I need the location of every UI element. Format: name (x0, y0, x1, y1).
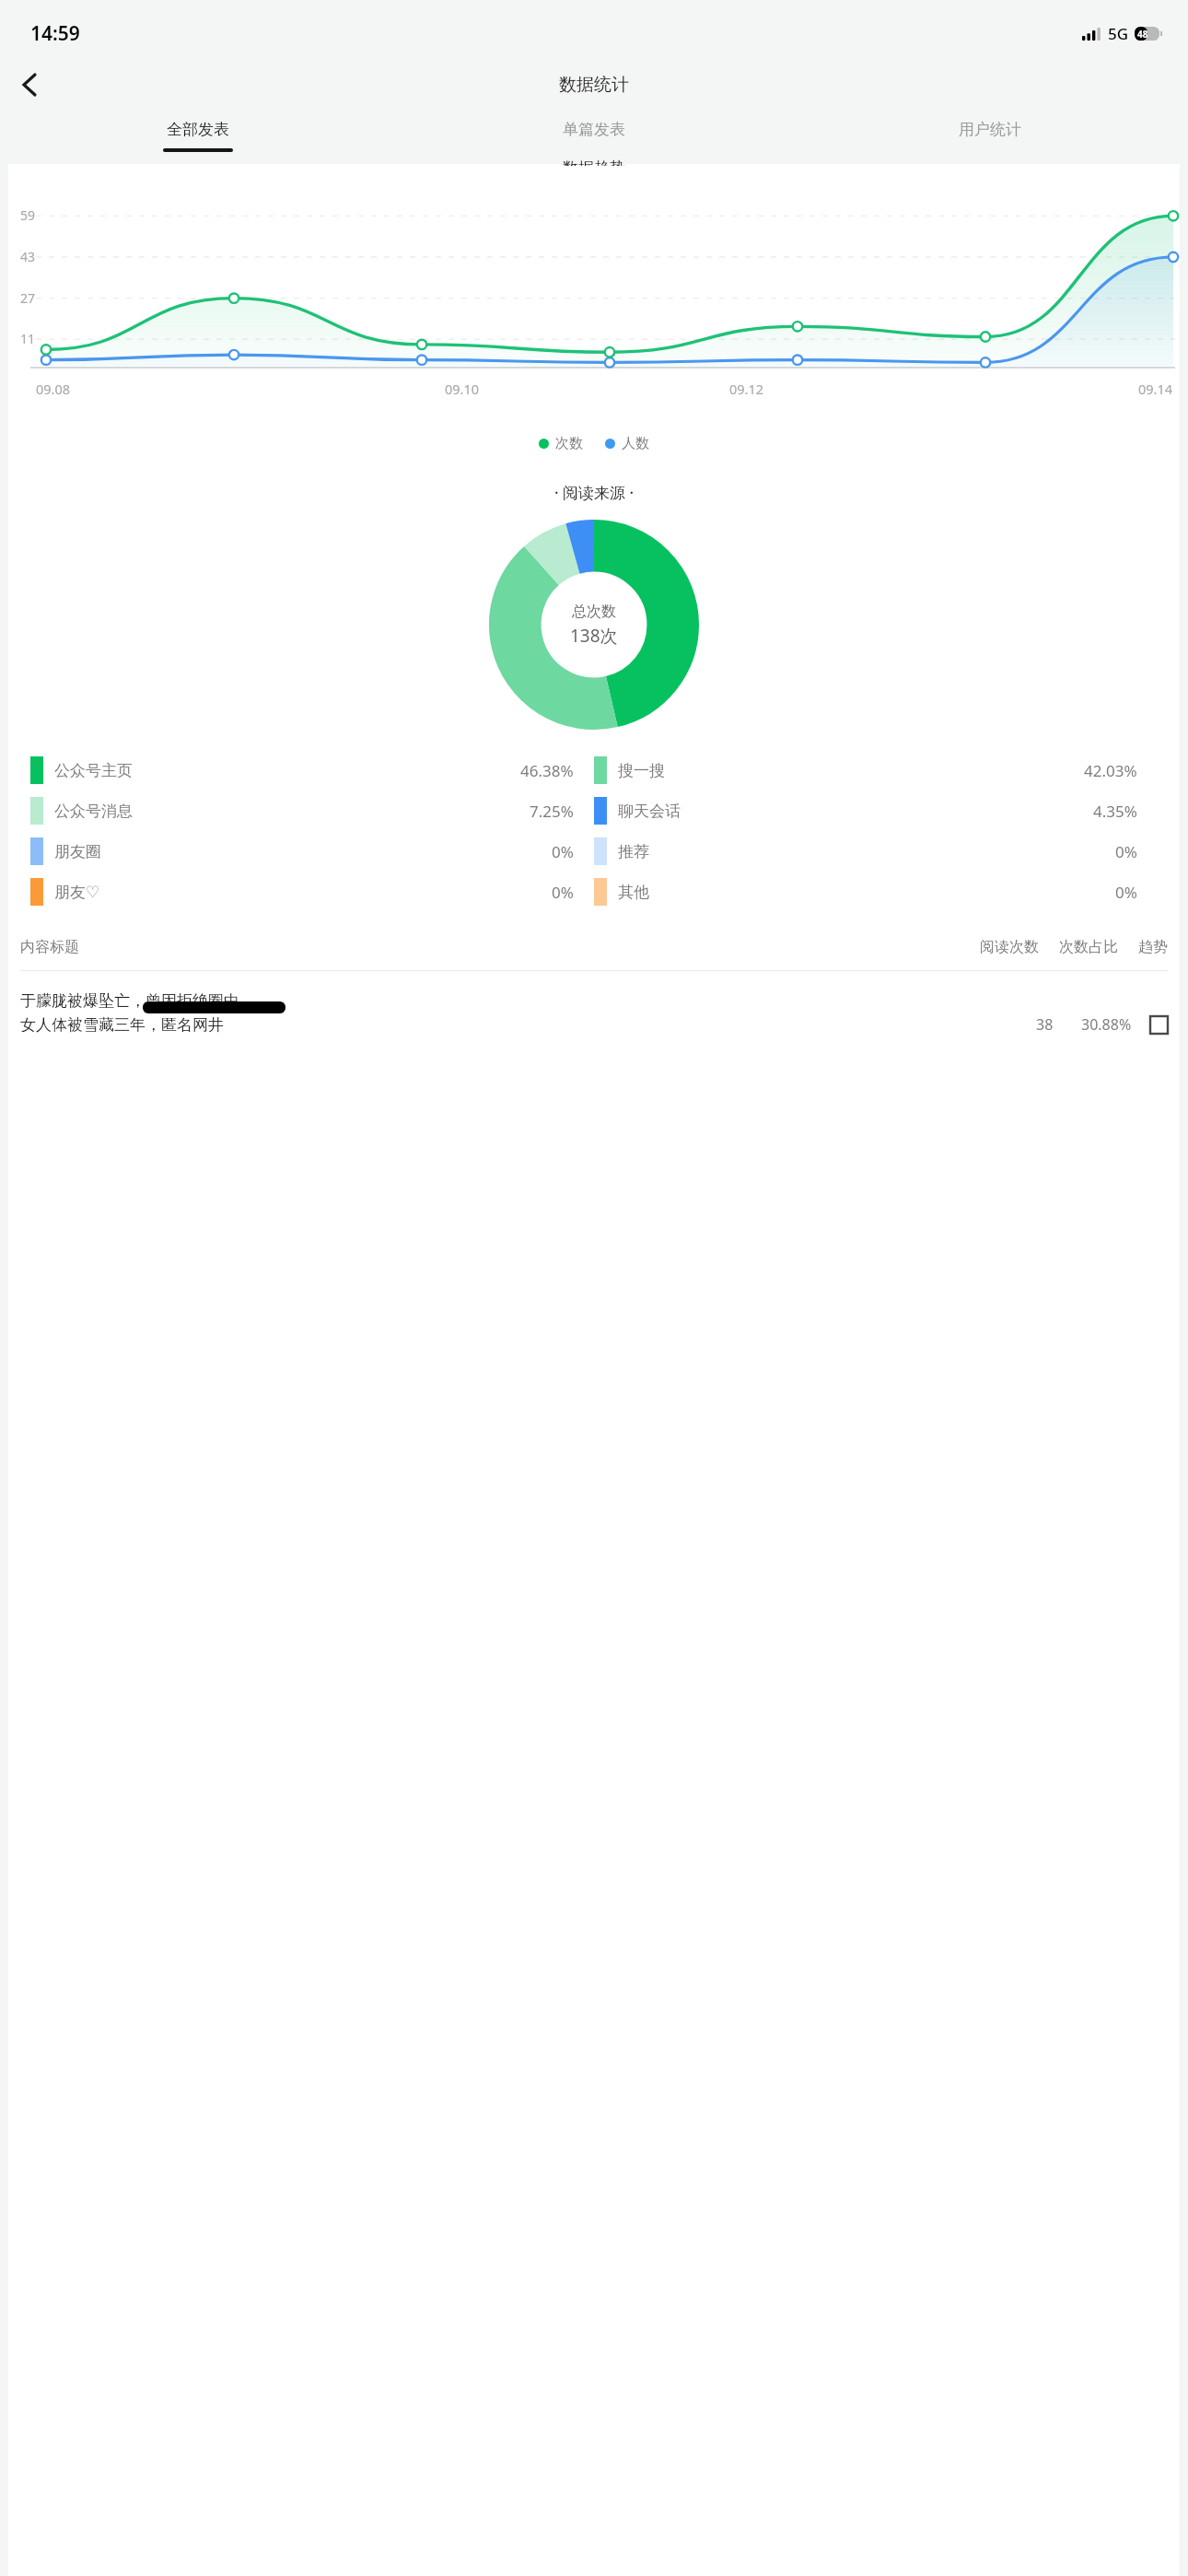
staticText: 48 (1137, 28, 1148, 41)
staticText: 0% (1115, 882, 1137, 903)
staticText: 单篇发表 (563, 120, 625, 139)
staticText: 09.10 (445, 380, 480, 398)
staticText: 38 (1036, 1014, 1054, 1035)
staticText: 内容标题 (20, 938, 79, 956)
button[interactable]: 公众号主页 (30, 750, 594, 790)
staticText: · 数据趋势 · (554, 157, 635, 166)
staticText: 42.03% (1084, 760, 1137, 781)
button[interactable]: Back (7, 63, 52, 107)
staticText: 11 (13, 330, 35, 347)
button[interactable]: 全部发表 (0, 109, 396, 164)
button[interactable]: 用户统计 (792, 109, 1188, 164)
staticText: 阅读次数 (980, 938, 1039, 956)
staticText: 09.08 (36, 380, 71, 398)
staticText: 聊天会话 (618, 802, 681, 821)
staticText: 30.88% (1081, 1014, 1132, 1035)
staticText: 搜一搜 (618, 761, 665, 780)
button[interactable]: 朋友♡ (30, 872, 594, 912)
button[interactable]: 其他 (594, 872, 1158, 912)
staticText: 次数 (555, 435, 583, 452)
staticText: · 阅读来源 · (8, 482, 1180, 503)
staticText: 次数占比 (1059, 938, 1118, 956)
button[interactable]: 搜一搜 (594, 750, 1158, 790)
staticText: 朋友♡ (54, 883, 100, 902)
button[interactable]: 朋友圈 (30, 831, 594, 872)
button[interactable]: 公众号消息 (30, 790, 594, 831)
staticText: 公众号主页 (54, 761, 133, 780)
staticText: 27 (13, 289, 35, 307)
staticText: 于朦胧被爆坠亡，曾因拒绝圈中 (20, 991, 239, 1011)
button[interactable]: 推荐 (594, 831, 1158, 872)
staticText: 46.38% (520, 760, 574, 781)
button[interactable]: 聊天会话 (594, 790, 1158, 831)
button[interactable]: 单篇发表 (396, 109, 792, 164)
staticText: 公众号消息 (54, 802, 133, 821)
staticText: 59 (13, 206, 35, 224)
staticText: 5G (1108, 23, 1129, 44)
button[interactable]: 次数 (539, 435, 583, 452)
staticText: 0% (552, 841, 574, 862)
staticText: 女人体被雪藏三年，匿名网井 (20, 1015, 224, 1035)
staticText: 其他 (618, 883, 649, 902)
staticText: 09.14 (1138, 380, 1173, 398)
staticText: 0% (1115, 841, 1137, 862)
staticText: 43 (13, 248, 35, 265)
staticText: 数据统计 (559, 74, 629, 96)
button[interactable]: 女人体被雪藏三年，匿名网井 (20, 1014, 1168, 1035)
staticText: 4.35% (1093, 801, 1137, 822)
staticText: 人数 (622, 435, 649, 452)
staticText: 趋势 (1138, 938, 1168, 956)
staticText: 7.25% (530, 801, 574, 822)
button[interactable]: 人数 (605, 435, 649, 452)
staticText: 朋友圈 (54, 842, 101, 861)
staticText: 0% (552, 882, 574, 903)
staticText: 09.12 (729, 380, 764, 398)
staticText: 总次数 (572, 603, 616, 621)
staticText: 138次 (570, 624, 618, 648)
staticText: 推荐 (618, 842, 649, 861)
staticText: 全部发表 (167, 120, 229, 139)
button[interactable]: 于朦胧被爆坠亡，曾因拒绝圈中 (20, 991, 1168, 1011)
staticText: 用户统计 (959, 120, 1021, 139)
staticText: 14:59 (30, 20, 80, 47)
